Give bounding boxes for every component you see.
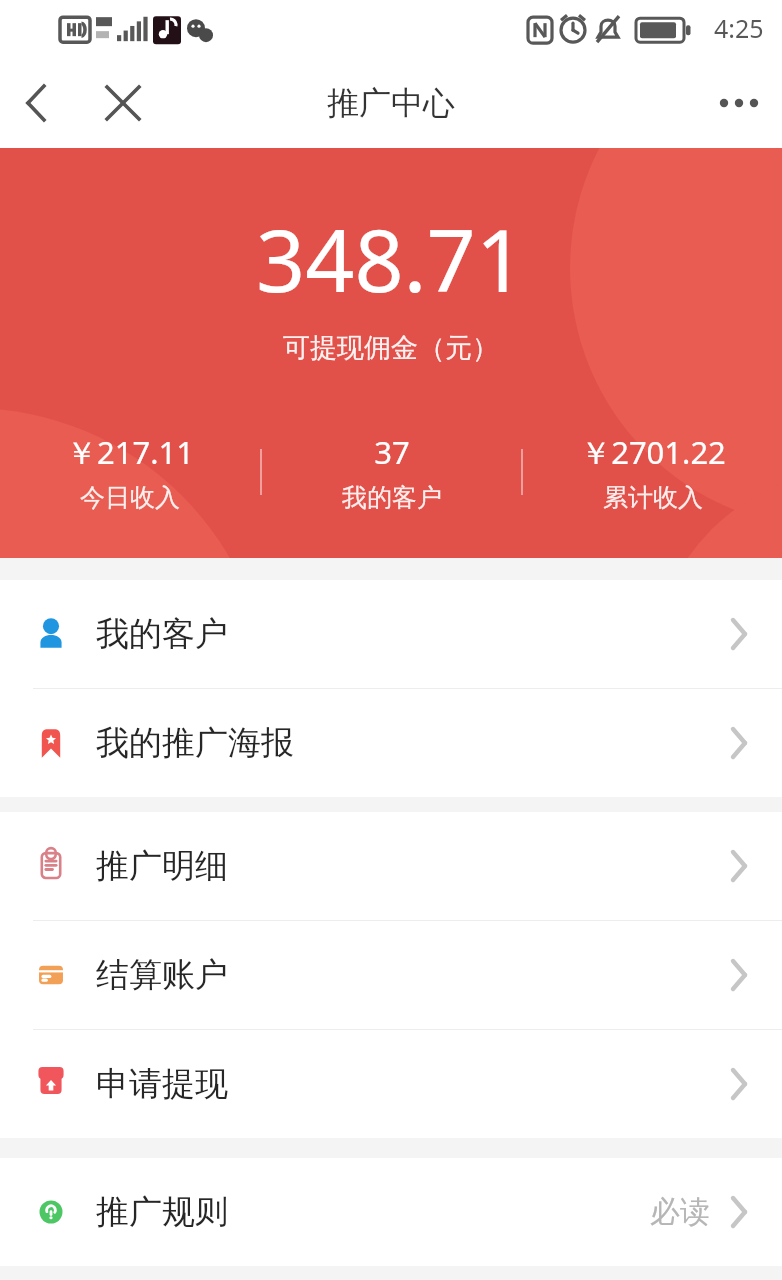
button[interactable]: 推广规则 xyxy=(0,1158,782,1266)
staticText: ￥2701.22 xyxy=(580,431,726,473)
staticText: 我的客户 xyxy=(96,613,228,655)
button[interactable]: Close xyxy=(95,75,151,131)
staticText: 我的客户 xyxy=(342,482,442,513)
staticText: ￥217.11 xyxy=(66,431,194,473)
staticText: 申请提现 xyxy=(96,1063,228,1105)
button[interactable]: 我的推广海报 xyxy=(0,689,782,797)
button[interactable]: 推广明细 xyxy=(0,812,782,920)
button[interactable]: 申请提现 xyxy=(0,1030,782,1138)
staticText: 348.71 xyxy=(256,200,526,317)
staticText: 可提现佣金（元） xyxy=(283,331,499,365)
staticText: 4:25 xyxy=(714,11,764,45)
button[interactable]: 37 xyxy=(262,431,521,513)
button[interactable]: ￥2701.22 xyxy=(523,431,782,513)
button[interactable]: 我的客户 xyxy=(0,580,782,688)
staticText: 累计收入 xyxy=(603,482,703,513)
staticText: 推广中心 xyxy=(327,83,455,123)
staticText: 推广明细 xyxy=(96,845,228,887)
staticText: 结算账户 xyxy=(96,954,228,996)
button[interactable]: ￥217.11 xyxy=(0,431,260,513)
staticText: 今日收入 xyxy=(80,482,180,513)
staticText: 必读 xyxy=(650,1193,710,1231)
button[interactable]: Back xyxy=(8,75,64,131)
staticText: 37 xyxy=(374,431,410,473)
button[interactable]: More options xyxy=(708,72,770,134)
button[interactable]: 结算账户 xyxy=(0,921,782,1029)
staticText: 推广规则 xyxy=(96,1191,228,1233)
staticText: 我的推广海报 xyxy=(96,722,294,764)
